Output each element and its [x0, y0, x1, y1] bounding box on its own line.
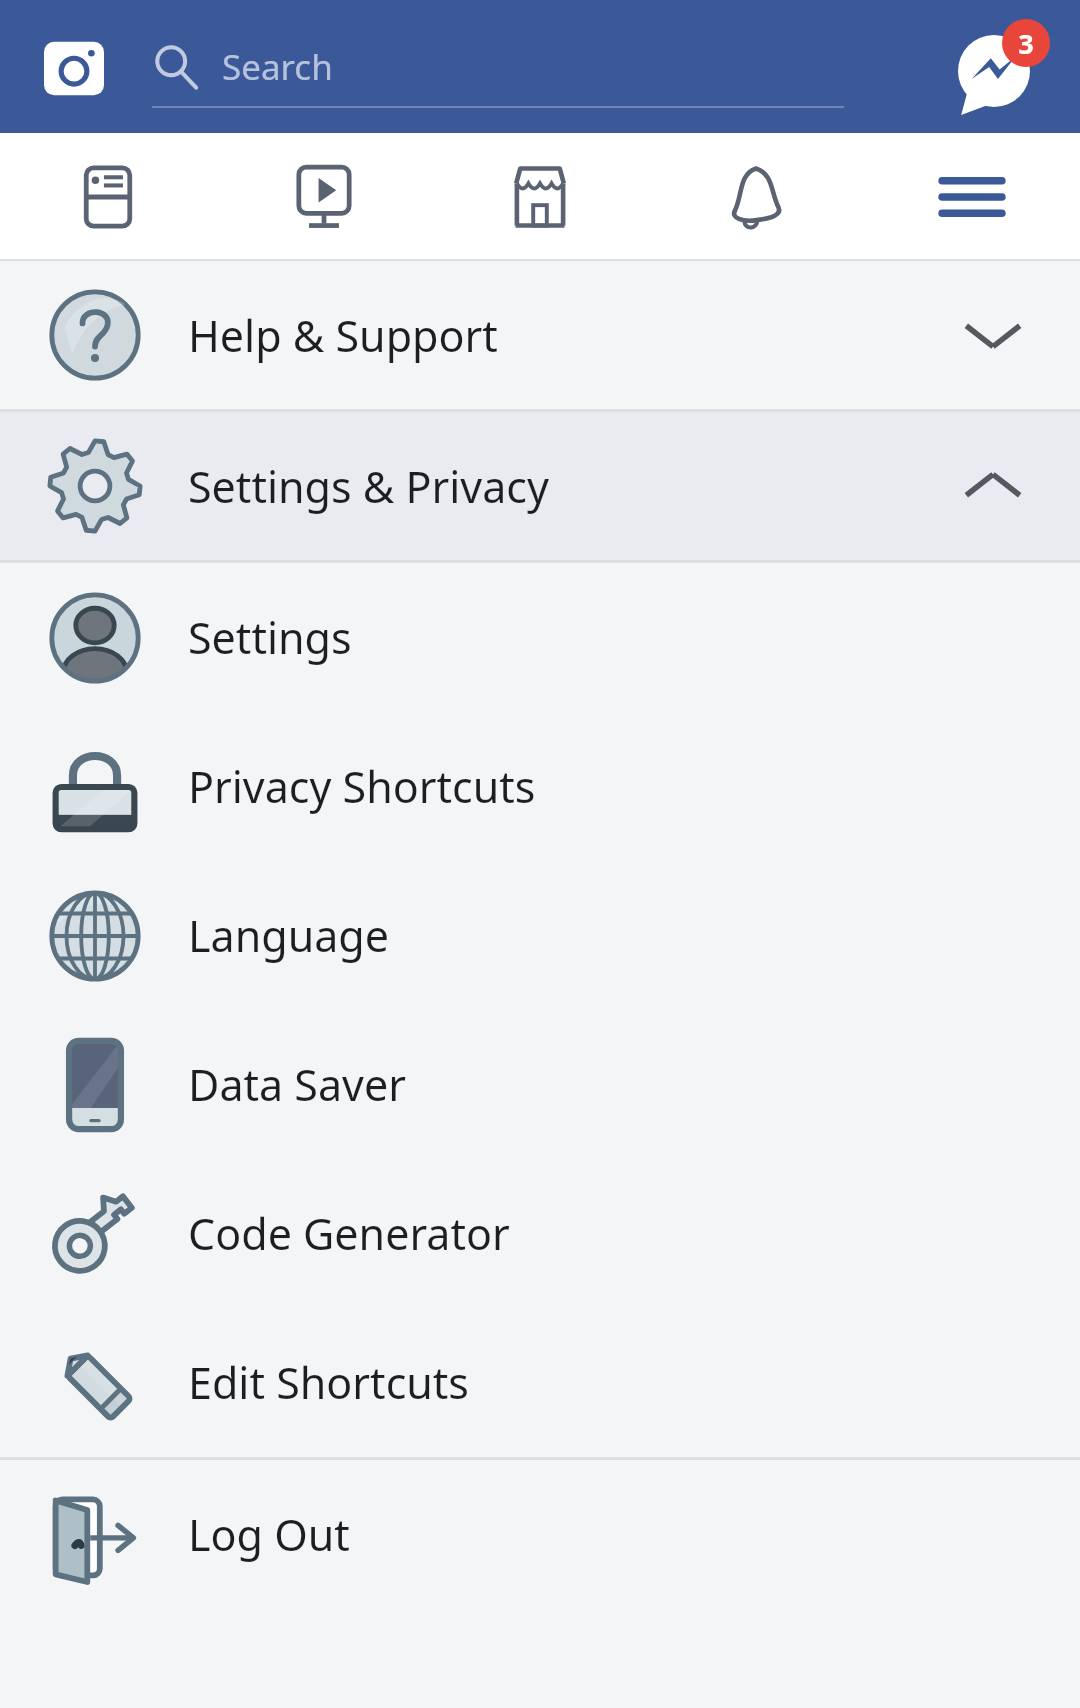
button[interactable]: Settings & Privacy [0, 412, 1080, 560]
staticText: Code Generator [188, 1204, 510, 1263]
button[interactable]: Privacy Shortcuts [0, 712, 1080, 861]
button[interactable]: News Feed [0, 133, 216, 261]
staticText: Settings & Privacy [188, 457, 549, 516]
button[interactable]: Watch [216, 133, 432, 261]
staticText: Language [188, 906, 390, 965]
button[interactable]: Notifications [648, 133, 864, 261]
button[interactable]: Log Out [0, 1460, 1080, 1609]
button[interactable]: Data Saver [0, 1010, 1080, 1159]
staticText: Edit Shortcuts [188, 1353, 469, 1412]
button[interactable]: Edit Shortcuts [0, 1308, 1080, 1457]
button[interactable]: Messenger [954, 19, 1050, 115]
button[interactable]: Language [0, 861, 1080, 1010]
staticText: Privacy Shortcuts [188, 757, 536, 816]
staticText: Settings [188, 608, 352, 667]
button[interactable]: Menu [864, 133, 1080, 261]
button[interactable]: Search [152, 15, 848, 119]
button[interactable]: Code Generator [0, 1159, 1080, 1308]
button[interactable]: Marketplace [432, 133, 648, 261]
button[interactable]: Help & Support [0, 261, 1080, 409]
staticText: Search [222, 43, 333, 91]
staticText: Data Saver [188, 1055, 406, 1114]
staticText: Log Out [188, 1505, 350, 1564]
button[interactable]: Settings [0, 563, 1080, 712]
button[interactable]: Camera [36, 29, 112, 105]
staticText: 3 [1018, 25, 1034, 62]
staticText: Help & Support [188, 306, 498, 365]
